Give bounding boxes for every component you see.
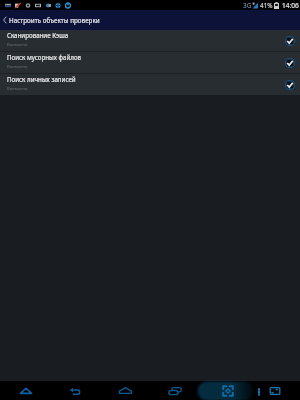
staticText: Сканирование Кэша xyxy=(7,31,69,39)
button[interactable]: Back xyxy=(0,10,9,30)
button[interactable]: Back xyxy=(63,381,87,400)
button[interactable]: Поиск личных записей xyxy=(0,74,300,95)
staticText: Включено xyxy=(7,64,28,70)
staticText: Включено xyxy=(7,86,28,92)
staticText: Поиск мусорных файлов xyxy=(7,53,82,61)
staticText: 14:06 xyxy=(282,1,299,10)
button[interactable]: Scan xyxy=(216,381,240,400)
button[interactable]: Menu xyxy=(14,381,38,400)
button[interactable]: Recents xyxy=(163,381,187,400)
staticText: Поиск личных записей xyxy=(7,75,76,83)
button[interactable]: Сканирование Кэша xyxy=(0,30,300,51)
button[interactable]: Capture xyxy=(263,381,287,400)
staticText: Включено xyxy=(7,42,28,48)
button[interactable]: More options xyxy=(247,381,271,400)
staticText: 3G xyxy=(243,1,252,10)
staticText: 41% xyxy=(260,1,273,10)
button[interactable]: Toggle xyxy=(285,80,295,90)
button[interactable]: Toggle xyxy=(285,58,295,68)
button[interactable]: Home xyxy=(113,381,137,400)
staticText: Настроить объекты проверки xyxy=(9,16,100,25)
button[interactable]: Поиск мусорных файлов xyxy=(0,52,300,73)
button[interactable]: Toggle xyxy=(285,36,295,46)
